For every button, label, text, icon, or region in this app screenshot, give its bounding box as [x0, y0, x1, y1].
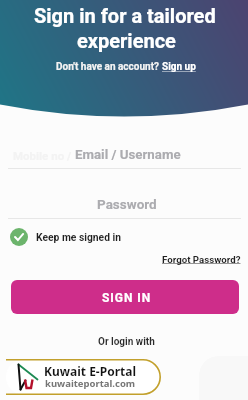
button[interactable]: Sign up [162, 61, 196, 73]
staticText: Keep me signed in [36, 231, 122, 243]
staticText: experience [77, 29, 176, 52]
button[interactable]: SIGN IN [11, 280, 239, 314]
staticText: Forgot Password? [162, 254, 241, 265]
staticText: Don't have an account? [56, 61, 162, 73]
button[interactable]: Password [0, 188, 248, 218]
staticText: Password [97, 196, 157, 212]
button[interactable]: Forgot Password? [162, 254, 241, 265]
staticText: SIGN IN [102, 291, 152, 305]
staticText: Mobile no / [13, 149, 72, 162]
staticText: Sign up [162, 61, 196, 73]
staticText: Or login with [98, 336, 155, 348]
staticText: kuwaiteportal.com [45, 377, 136, 390]
staticText: Kuwait E-Portal [44, 363, 136, 379]
staticText: Email / Username [75, 147, 181, 163]
button[interactable]: Keep me signed in [10, 228, 122, 246]
button[interactable]: Mobile no / [0, 140, 248, 168]
staticText: Sign in for a tailored [34, 4, 216, 27]
